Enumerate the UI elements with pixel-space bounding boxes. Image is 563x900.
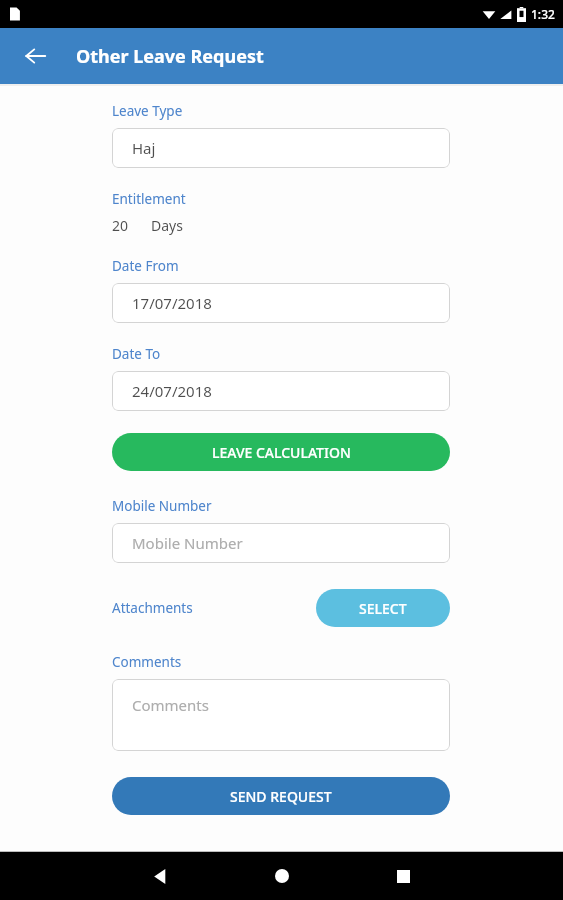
button[interactable]: 17/07/2018 <box>112 283 450 323</box>
staticText: SEND REQUEST <box>230 787 332 806</box>
staticText: 20 <box>112 216 129 235</box>
button[interactable]: SEND REQUEST <box>112 777 450 815</box>
staticText: 17/07/2018 <box>132 293 212 313</box>
staticText: Attachments <box>112 599 193 617</box>
button[interactable]: Mobile Number <box>112 523 450 563</box>
button[interactable]: Back <box>16 36 56 76</box>
staticText: Date From <box>112 257 179 275</box>
button[interactable]: LEAVE CALCULATION <box>112 433 450 471</box>
staticText: LEAVE CALCULATION <box>212 443 351 462</box>
staticText: Days <box>151 216 183 235</box>
staticText: Mobile Number <box>112 497 212 515</box>
staticText: SELECT <box>359 599 407 618</box>
button[interactable]: SELECT <box>316 589 450 627</box>
staticText: Other Leave Request <box>76 44 264 69</box>
button[interactable]: Haj <box>112 128 450 168</box>
button[interactable]: Back <box>140 856 180 896</box>
button[interactable]: Comments <box>112 679 450 751</box>
staticText: Mobile Number <box>132 533 243 553</box>
staticText: Entitlement <box>112 190 186 208</box>
staticText: Comments <box>132 695 209 715</box>
button[interactable]: 24/07/2018 <box>112 371 450 411</box>
staticText: Comments <box>112 653 182 671</box>
staticText: Leave Type <box>112 102 183 120</box>
button[interactable]: Recent apps <box>383 856 423 896</box>
staticText: Haj <box>132 138 156 158</box>
button[interactable]: Home <box>262 856 302 896</box>
staticText: 24/07/2018 <box>132 381 212 401</box>
staticText: 1:32 <box>531 6 555 22</box>
staticText: Date To <box>112 345 161 363</box>
